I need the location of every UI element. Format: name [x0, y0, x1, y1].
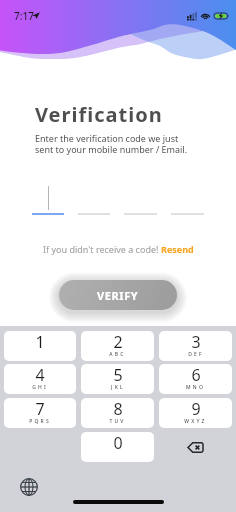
- staticText: 6: [191, 364, 201, 386]
- button[interactable]: 0: [81, 432, 154, 462]
- button[interactable]: [78, 185, 110, 215]
- button[interactable]: 7: [4, 398, 76, 428]
- button[interactable]: 2: [81, 331, 154, 361]
- staticText: 7: [35, 398, 45, 420]
- staticText: TUV: [109, 418, 126, 425]
- button[interactable]: [32, 185, 64, 215]
- button[interactable]: 9: [159, 398, 232, 428]
- staticText: 3: [191, 331, 201, 353]
- staticText: MNO: [186, 384, 205, 391]
- button[interactable]: Change keyboard language: [17, 475, 41, 499]
- button[interactable]: 8: [81, 398, 154, 428]
- staticText: Verification: [35, 101, 163, 128]
- staticText: JKL: [111, 384, 125, 391]
- button[interactable]: VERIFY: [59, 280, 177, 310]
- button[interactable]: 3: [159, 331, 232, 361]
- staticText: 4: [35, 364, 45, 386]
- staticText: 5: [113, 364, 123, 386]
- staticText: DEF: [188, 351, 204, 358]
- button[interactable]: Resend: [161, 243, 194, 255]
- staticText: 9: [191, 398, 201, 420]
- staticText: If you didn't receive a code!: [43, 243, 161, 255]
- staticText: 0: [113, 432, 123, 454]
- staticText: 2: [113, 331, 123, 353]
- button[interactable]: 4: [4, 364, 76, 394]
- staticText: Resend: [161, 243, 194, 255]
- staticText: Enter the verification code we just sent…: [35, 132, 188, 155]
- button[interactable]: Backspace: [159, 432, 232, 462]
- staticText: ABC: [109, 351, 126, 358]
- button[interactable]: 5: [81, 364, 154, 394]
- button[interactable]: 1: [4, 331, 76, 361]
- staticText: 8: [113, 398, 123, 420]
- staticText: 7:17: [14, 9, 34, 23]
- button[interactable]: 6: [159, 364, 232, 394]
- staticText: 1: [35, 331, 45, 353]
- staticText: WXYZ: [184, 418, 207, 425]
- staticText: PQRS: [29, 418, 51, 425]
- button[interactable]: [171, 185, 204, 215]
- button[interactable]: [124, 185, 157, 215]
- staticText: VERIFY: [97, 288, 139, 303]
- staticText: GHI: [32, 384, 48, 391]
